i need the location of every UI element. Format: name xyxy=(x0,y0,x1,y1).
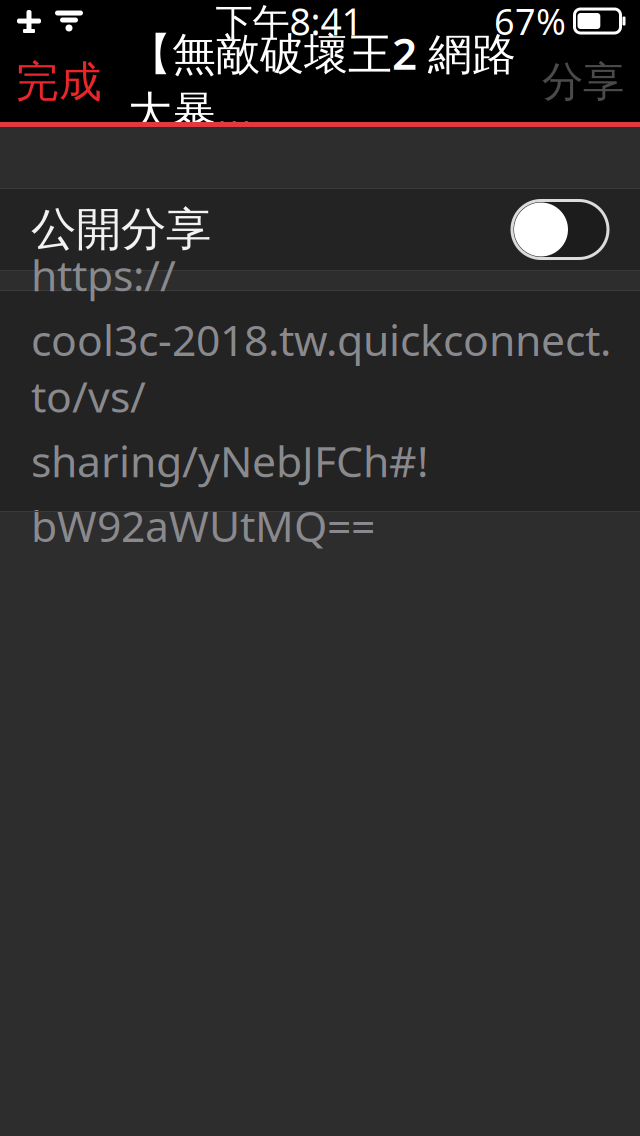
button[interactable]: 分享 xyxy=(532,42,640,122)
button[interactable]: 完成 xyxy=(0,42,112,122)
button[interactable]: https:// xyxy=(0,291,640,511)
staticText: https:// xyxy=(31,246,176,303)
button[interactable]: 公開分享 xyxy=(0,189,640,270)
staticText: 完成 xyxy=(16,56,102,108)
staticText: 下午8:41 xyxy=(215,0,362,46)
staticText: 分享 xyxy=(542,57,624,107)
staticText: 公開分享 xyxy=(31,202,211,257)
staticText: 67% xyxy=(494,0,566,45)
staticText: bW92aWUtMQ== xyxy=(31,497,375,554)
staticText: cool3c-2018.tw.quickconnect.to/vs/ xyxy=(31,311,611,424)
staticText: sharing/yNebJFCh#! xyxy=(31,432,428,489)
staticText: 【無敵破壞王2 網路大暴… xyxy=(128,24,516,140)
